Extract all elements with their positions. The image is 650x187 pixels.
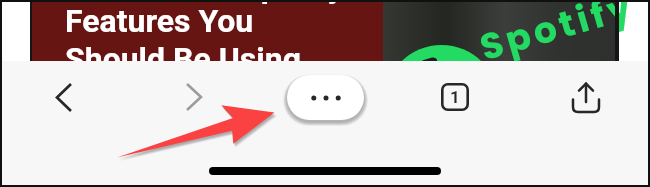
button[interactable]: More options	[287, 75, 364, 120]
staticText: Spotify	[474, 0, 641, 72]
button[interactable]: Tabs	[435, 77, 475, 117]
button[interactable]: Forward	[174, 77, 214, 117]
staticText: Features You	[65, 2, 254, 40]
staticText: 10 Hidden Spotify	[86, 0, 344, 6]
staticText: Should Be Using	[65, 40, 301, 78]
button[interactable]: Back	[44, 77, 84, 117]
button[interactable]: Share	[566, 78, 606, 118]
staticText: 1	[450, 87, 460, 107]
